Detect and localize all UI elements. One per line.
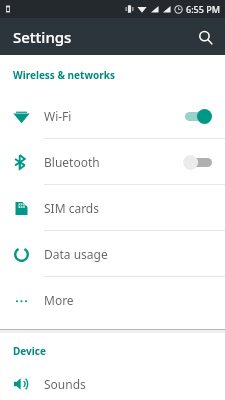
button[interactable]: Bluetooth — [0, 139, 225, 184]
button[interactable]: Wi-Fi — [0, 93, 225, 138]
button[interactable]: Data usage — [0, 231, 225, 276]
button[interactable]: Bluetooth toggle, off — [183, 153, 213, 171]
staticText: Bluetooth — [44, 154, 183, 170]
button[interactable]: Wi-Fi toggle, on — [183, 107, 213, 125]
staticText: Settings — [13, 27, 72, 47]
button[interactable]: Search — [190, 22, 220, 52]
staticText: Sounds — [44, 376, 213, 392]
staticText: SIM cards — [44, 200, 213, 216]
button[interactable]: Sounds — [0, 368, 225, 400]
staticText: More — [44, 292, 213, 308]
staticText: Device — [13, 344, 225, 358]
staticText: 6:55 PM — [186, 3, 220, 15]
button[interactable]: More — [0, 277, 225, 322]
button[interactable]: SIM cards — [0, 185, 225, 230]
staticText: Wireless & networks — [13, 68, 225, 82]
staticText: Wi-Fi — [44, 108, 183, 124]
staticText: Data usage — [44, 246, 213, 262]
